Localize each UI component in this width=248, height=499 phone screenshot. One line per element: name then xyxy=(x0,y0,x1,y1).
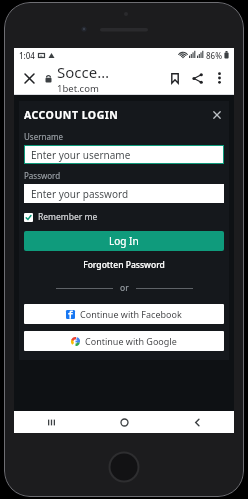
staticText: ACCOUNT LOGIN xyxy=(24,108,119,122)
staticText: Socce… xyxy=(57,62,110,82)
staticText: Username xyxy=(24,131,63,142)
button[interactable]: Bookmark xyxy=(165,68,185,88)
button[interactable]: Recent apps xyxy=(14,411,88,433)
button[interactable]: Enter your username xyxy=(24,145,224,164)
staticText: or xyxy=(120,282,129,294)
staticText: Continue with Facebook xyxy=(80,308,182,320)
button[interactable]: Back xyxy=(161,411,234,433)
staticText: Enter your username xyxy=(31,148,131,162)
button[interactable]: Log In xyxy=(24,231,224,251)
staticText: Forgotten Password xyxy=(83,259,165,271)
staticText: Password xyxy=(24,170,61,181)
button[interactable]: Enter your password xyxy=(24,184,224,203)
staticText: Log In xyxy=(109,234,139,248)
button[interactable]: Close xyxy=(19,68,39,88)
button[interactable]: Close dialog xyxy=(210,108,224,122)
button[interactable]: Remember me xyxy=(24,211,98,223)
staticText: 1bet.com xyxy=(57,82,99,94)
staticText: Remember me xyxy=(38,211,98,223)
staticText: Continue with Google xyxy=(85,335,177,347)
staticText: 1:04 xyxy=(19,50,35,61)
staticText: Enter your password xyxy=(31,187,129,201)
button[interactable]: Share xyxy=(187,68,207,88)
button[interactable]: Continue with Facebook xyxy=(24,304,224,324)
button[interactable]: Continue with Google xyxy=(24,331,224,351)
button[interactable]: More options xyxy=(209,68,229,88)
button[interactable]: Home xyxy=(88,411,161,433)
staticText: 86% xyxy=(206,50,222,61)
button[interactable]: Forgotten Password xyxy=(24,259,224,271)
